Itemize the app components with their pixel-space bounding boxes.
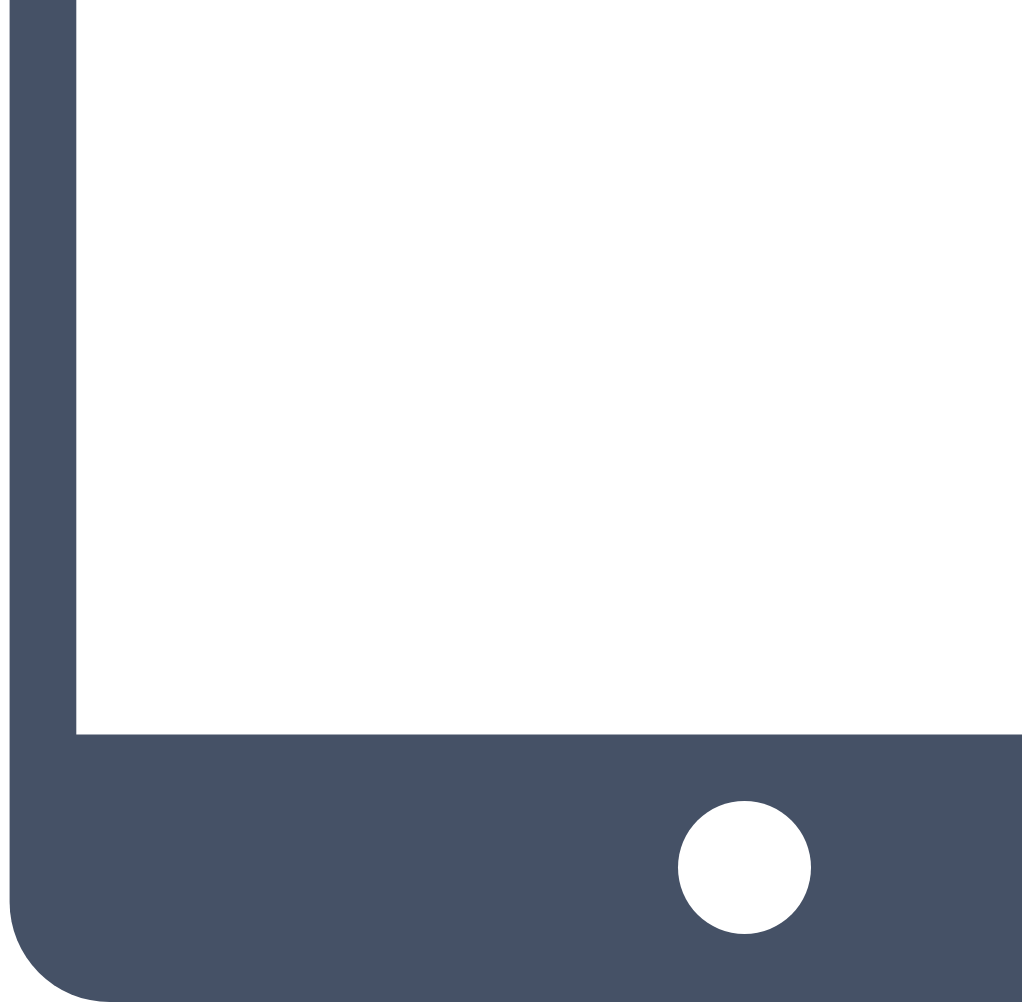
button[interactable]: Tablet device illustration bbox=[0, 0, 1022, 1003]
